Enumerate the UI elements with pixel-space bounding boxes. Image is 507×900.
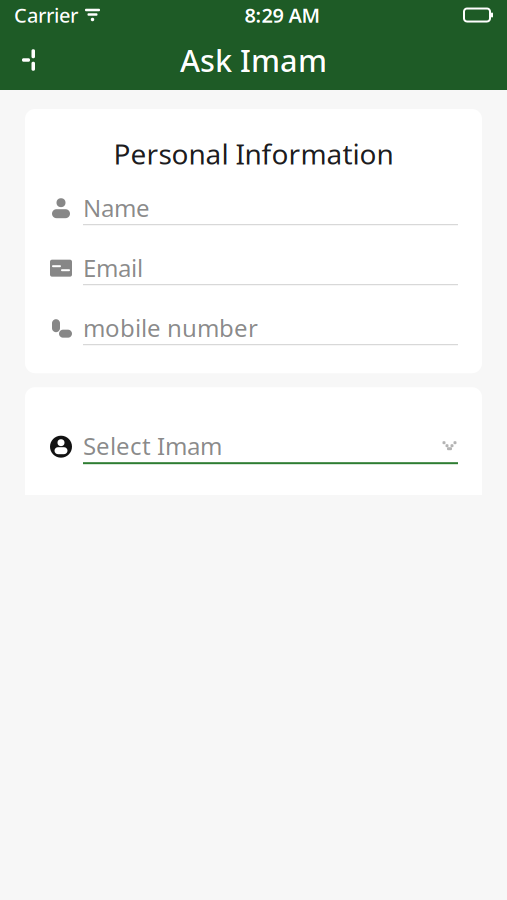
staticText: Name — [83, 192, 150, 224]
staticText: 8:29 AM — [244, 2, 320, 28]
staticText: Email — [83, 252, 143, 284]
staticText: Personal Information — [113, 135, 393, 172]
staticText: Select Imam — [83, 430, 222, 462]
staticText: mobile number — [83, 312, 258, 344]
button[interactable]: Back — [0, 33, 54, 87]
button[interactable]: Select Imam — [49, 429, 458, 464]
staticText: Ask Imam — [180, 40, 327, 80]
staticText: Carrier — [14, 2, 78, 28]
